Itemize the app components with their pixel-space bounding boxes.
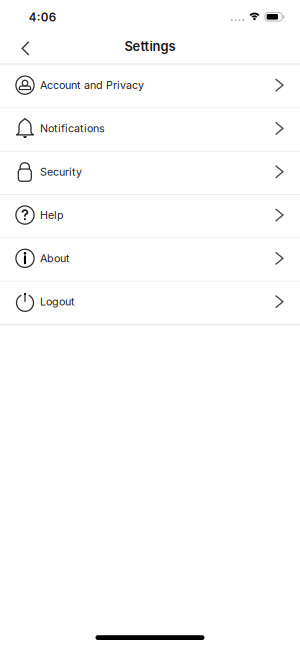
button[interactable]: Back xyxy=(0,42,40,57)
button[interactable]: About xyxy=(0,238,300,281)
staticText: Help xyxy=(40,209,64,222)
staticText: Logout xyxy=(40,295,75,308)
staticText: Security xyxy=(40,165,82,178)
staticText: 4:06 xyxy=(29,10,56,24)
staticText: Settings xyxy=(124,38,175,54)
staticText: Notifications xyxy=(40,122,105,135)
button[interactable]: Account and Privacy xyxy=(0,65,300,107)
staticText: About xyxy=(40,252,70,265)
staticText: Account and Privacy xyxy=(40,79,144,92)
button[interactable]: Logout xyxy=(0,282,300,324)
button[interactable]: Help xyxy=(0,195,300,237)
button[interactable]: Security xyxy=(0,152,300,194)
button[interactable]: Notifications xyxy=(0,108,300,151)
